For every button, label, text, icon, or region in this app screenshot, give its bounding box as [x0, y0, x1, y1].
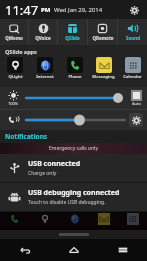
button[interactable]: QVoice — [29, 19, 57, 45]
staticText: Phone — [68, 74, 82, 80]
button[interactable]: Brightness — [26, 90, 125, 106]
staticText: QMemo — [5, 35, 23, 41]
button[interactable]: Sound — [118, 19, 147, 45]
button[interactable]: Volume — [26, 112, 125, 128]
button[interactable]: Phone — [60, 57, 89, 80]
staticText: Notifications — [5, 132, 48, 141]
button[interactable]: USB connected — [0, 154, 147, 182]
staticText: PM — [41, 6, 51, 14]
button[interactable]: USB debugging connected — [0, 183, 147, 211]
staticText: Messaging — [92, 74, 115, 80]
button[interactable]: Back — [0, 239, 49, 261]
staticText: Auto — [132, 101, 141, 106]
staticText: 100% — [8, 101, 19, 106]
button[interactable]: Messaging — [89, 57, 118, 80]
staticText: Charge only — [28, 170, 57, 177]
staticText: USB debugging connected — [28, 188, 120, 198]
staticText: QLight — [8, 74, 23, 80]
button[interactable]: Home — [49, 239, 98, 261]
staticText: Internet — [36, 74, 54, 80]
button[interactable]: Close notification shade — [0, 230, 147, 239]
staticText: Touch to disable USB debugging. — [28, 199, 106, 206]
button[interactable]: Sound settings — [125, 110, 147, 130]
staticText: QVoice — [35, 35, 51, 41]
staticText: 11:47 — [5, 1, 39, 19]
button[interactable]: QMemo — [0, 19, 28, 45]
button[interactable]: QSlide — [58, 19, 87, 45]
button[interactable]: QRemote — [88, 19, 117, 45]
staticText: Calendar — [123, 74, 142, 80]
button[interactable]: Calendar — [118, 57, 147, 80]
staticText: Emergency calls only — [49, 145, 98, 152]
button[interactable]: Recent apps — [98, 239, 147, 261]
button[interactable]: QLight — [0, 57, 30, 80]
button[interactable]: Auto — [125, 90, 147, 106]
button[interactable]: Settings — [126, 2, 142, 18]
staticText: QSlide — [65, 35, 80, 41]
staticText: QRemote — [92, 35, 114, 41]
staticText: Sound — [126, 35, 140, 41]
staticText: Wed Jan 29, 2014 — [54, 6, 103, 14]
staticText: USB connected — [28, 159, 81, 169]
button[interactable]: Internet — [30, 57, 60, 80]
staticText: QSlide apps — [5, 48, 37, 55]
